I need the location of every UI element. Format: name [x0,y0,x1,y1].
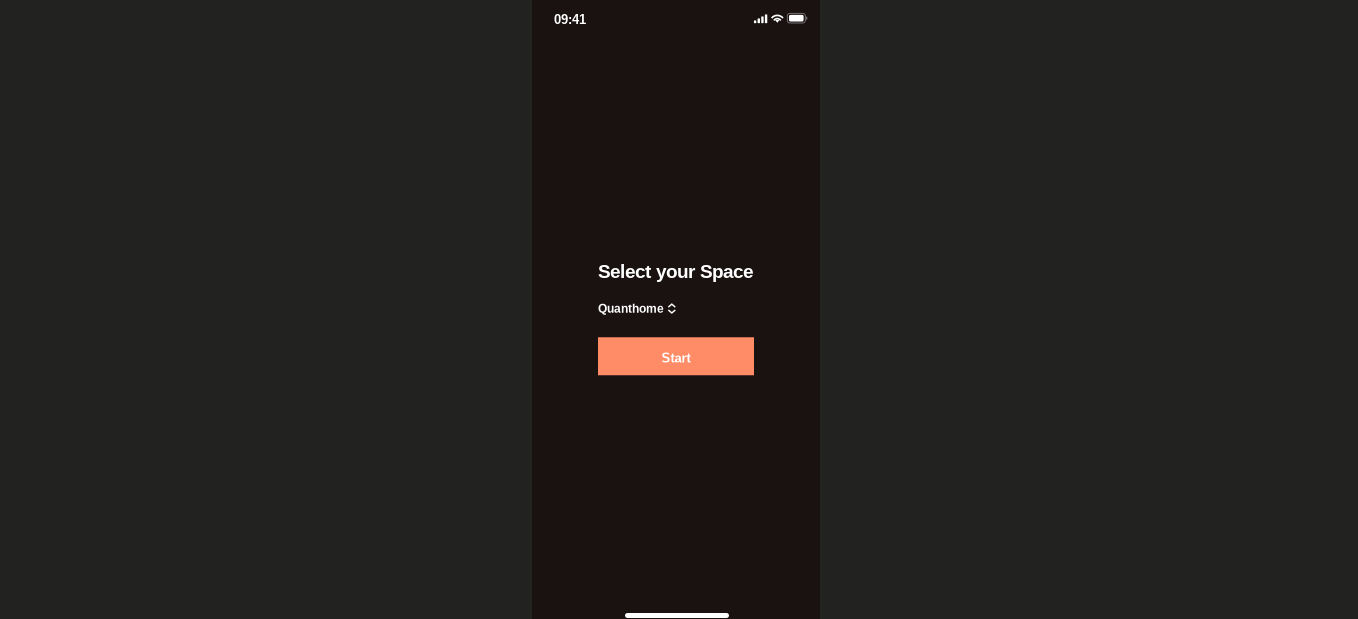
staticText: 09:41 [554,12,586,27]
staticText: Start [661,350,690,365]
staticText: Quanthome [598,302,664,315]
button[interactable]: Space, Quanthome [598,302,676,315]
button[interactable]: Start [598,337,754,375]
staticText: Select your Space [598,261,753,282]
